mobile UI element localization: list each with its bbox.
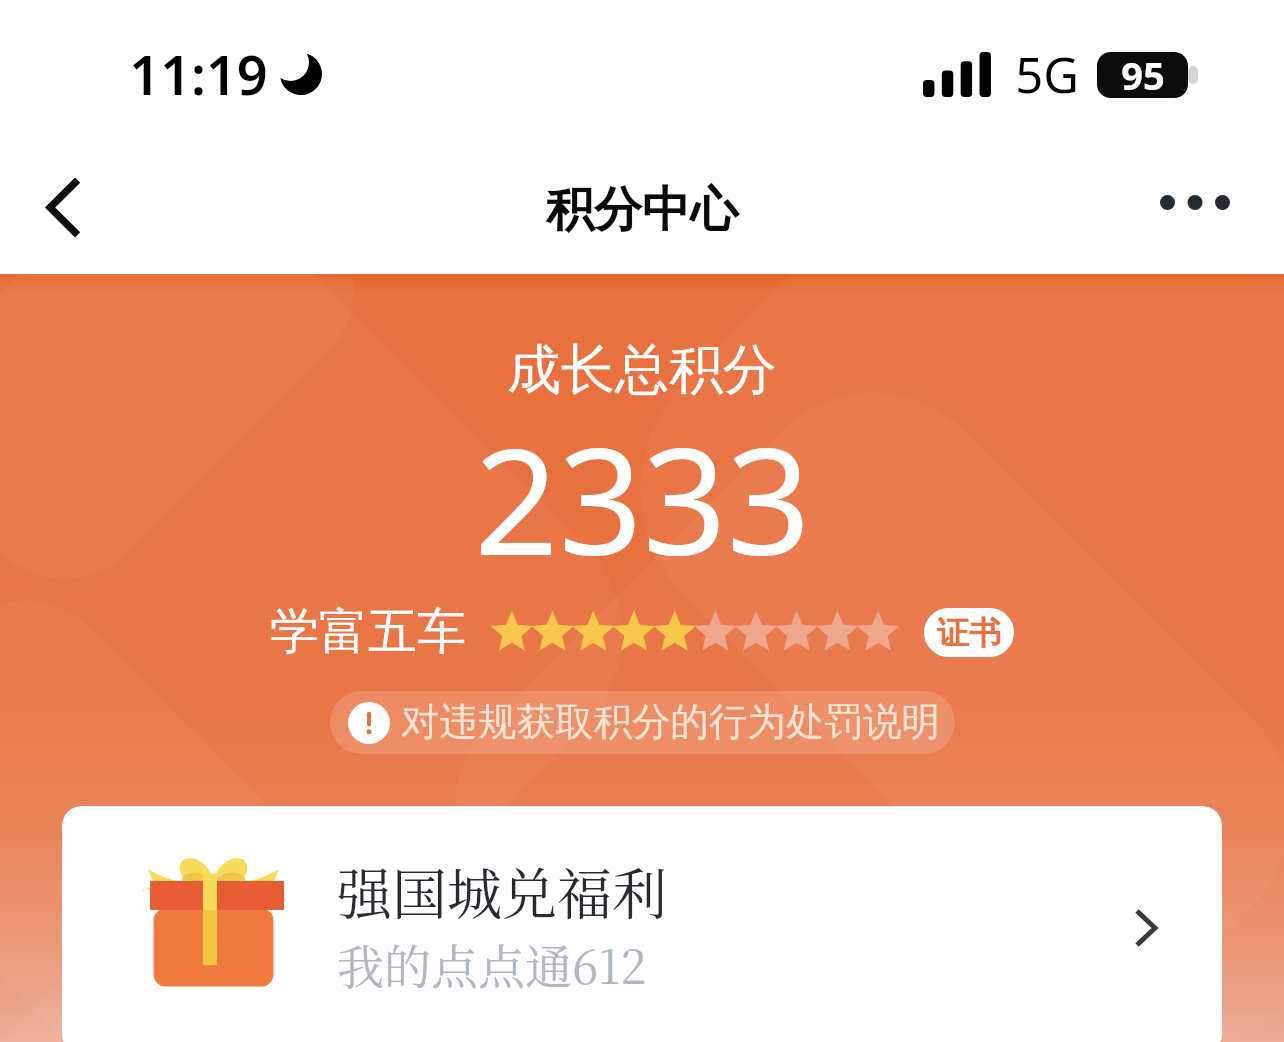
button[interactable]: 证书	[924, 608, 1014, 657]
button[interactable]: Back	[18, 162, 108, 252]
staticText: 强国城兑福利	[337, 851, 668, 930]
button[interactable]: 强国城兑福利	[62, 806, 1222, 1042]
staticText: 积分中心	[546, 180, 738, 240]
button[interactable]: More options	[1152, 162, 1237, 242]
staticText: 5G	[1015, 41, 1079, 108]
staticText: 成长总积分	[507, 336, 777, 404]
staticText: 11:19	[129, 37, 268, 111]
staticText: 我的点点通612	[337, 930, 647, 998]
staticText: 学富五车	[270, 601, 466, 663]
staticText: 2333	[474, 398, 811, 598]
button[interactable]: 对违规获取积分的行为处罚说明	[330, 691, 955, 754]
staticText: 95	[1121, 49, 1165, 101]
staticText: 证书	[937, 613, 1001, 653]
staticText: 对违规获取积分的行为处罚说明	[401, 698, 940, 747]
